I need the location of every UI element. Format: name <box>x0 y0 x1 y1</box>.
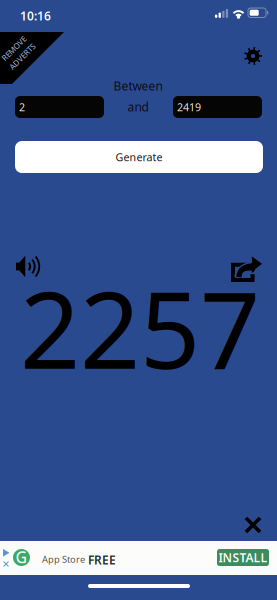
staticText: Between <box>113 78 162 94</box>
staticText: G <box>15 546 27 568</box>
button[interactable]: 2419 <box>173 96 262 118</box>
staticText: 10:16 <box>20 8 51 24</box>
button[interactable]: Generate <box>15 141 263 173</box>
button[interactable]: Speak number <box>16 255 46 278</box>
button[interactable]: Settings <box>239 42 267 70</box>
button[interactable]: 2 <box>15 96 104 118</box>
staticText: 2 <box>19 100 25 114</box>
staticText: App Store <box>42 553 85 565</box>
staticText: FREE <box>88 552 116 568</box>
staticText: 2257 <box>20 258 260 398</box>
button[interactable]: Close ad <box>240 512 266 538</box>
staticText: REMOVE <box>2 41 33 52</box>
staticText: 2419 <box>177 100 201 114</box>
staticText: and <box>127 99 148 115</box>
staticText: ADVERTS <box>1 53 34 64</box>
button[interactable]: INSTALL <box>217 549 269 566</box>
staticText: INSTALL <box>218 549 267 565</box>
button[interactable]: Share <box>231 256 262 282</box>
staticText: Generate <box>115 150 162 164</box>
button[interactable]: Remove Adverts <box>0 32 64 84</box>
